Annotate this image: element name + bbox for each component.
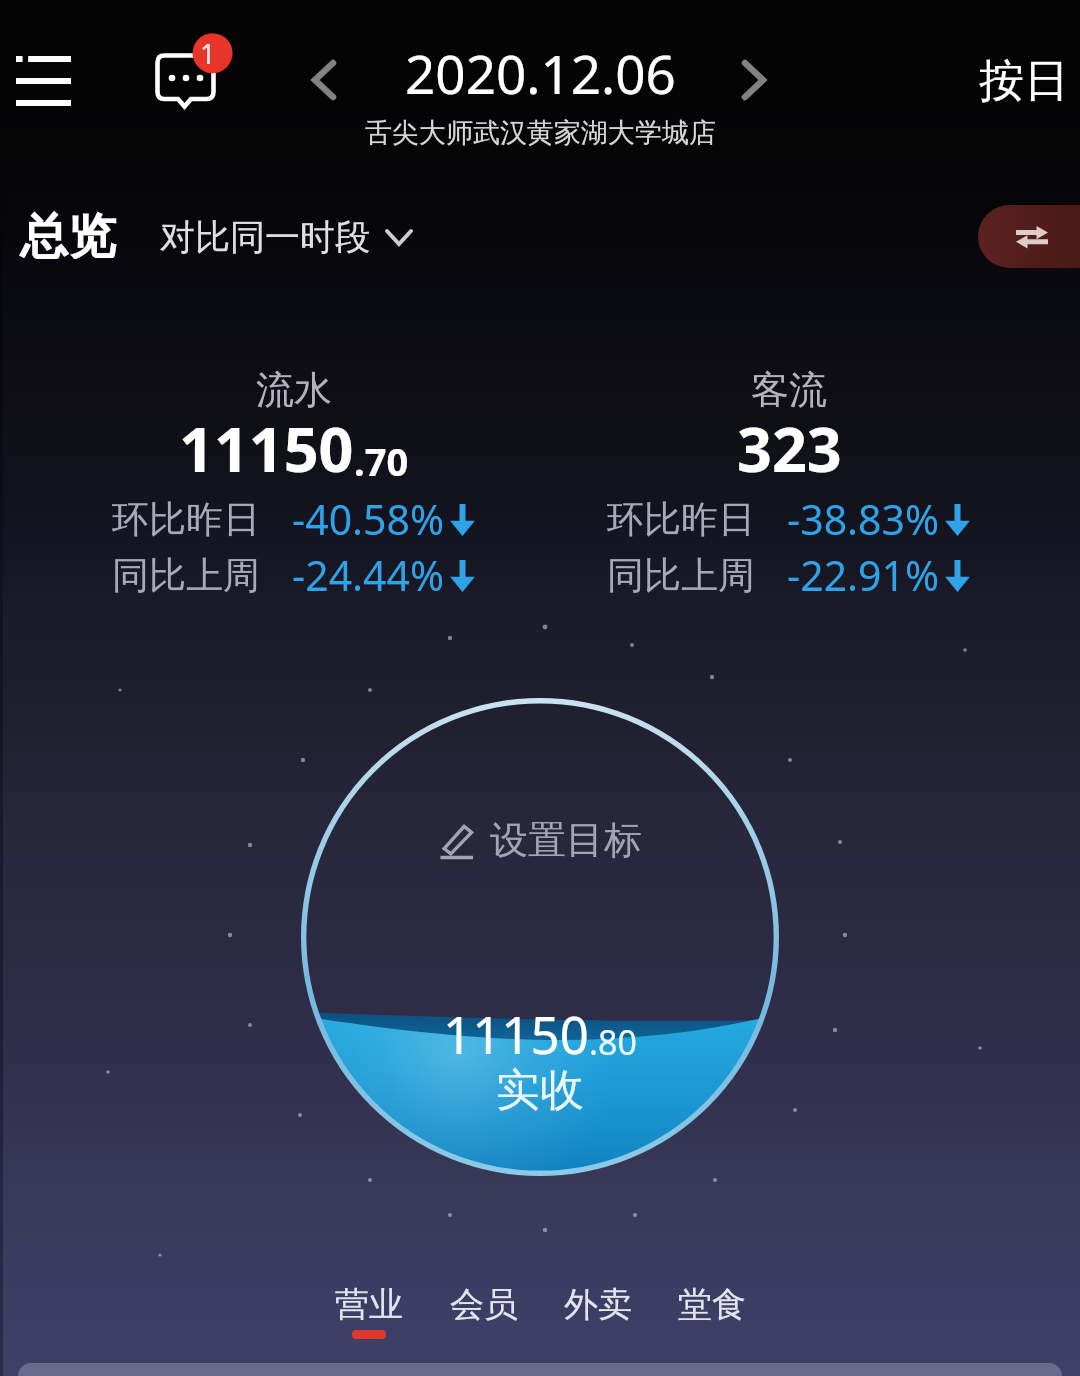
staticText: 堂食 — [678, 1283, 746, 1326]
staticText: 客流 — [751, 366, 827, 414]
staticText: 11150 — [179, 407, 354, 490]
staticText: .70 — [354, 435, 409, 487]
staticText: 环比昨日 — [112, 496, 260, 543]
staticText: 同比上周 — [607, 552, 755, 599]
button[interactable]: Switch comparison — [978, 205, 1080, 268]
staticText: 总览 — [20, 207, 116, 267]
staticText: 对比同一时段 — [160, 215, 370, 259]
button[interactable]: Next day — [718, 44, 790, 116]
staticText: .80 — [589, 1019, 638, 1065]
button[interactable]: 营业 — [323, 1279, 415, 1343]
staticText: 舌尖大师武汉黄家湖大学城店 — [365, 116, 716, 150]
button[interactable]: 外卖 — [552, 1279, 644, 1343]
button[interactable]: 设置目标 — [439, 816, 642, 864]
button[interactable]: Previous day — [288, 44, 360, 116]
button[interactable]: 会员 — [438, 1279, 530, 1343]
staticText: 营业 — [335, 1283, 403, 1326]
staticText: -22.91% — [787, 547, 940, 603]
staticText: 2020.12.06 — [405, 37, 676, 109]
staticText: 11150 — [443, 999, 589, 1068]
staticText: 实收 — [496, 1063, 584, 1118]
staticText: -40.58% — [292, 491, 445, 547]
button[interactable]: 堂食 — [666, 1279, 758, 1343]
staticText: 环比昨日 — [607, 496, 755, 543]
staticText: 323 — [737, 407, 842, 490]
button[interactable]: 对比同一时段 — [160, 207, 412, 267]
button[interactable]: Menu — [4, 42, 82, 120]
button[interactable]: Messages — [140, 24, 240, 124]
staticText: -38.83% — [787, 491, 940, 547]
staticText: 按日 — [979, 53, 1069, 110]
staticText: 外卖 — [564, 1283, 632, 1326]
staticText: -24.44% — [292, 547, 445, 603]
staticText: 设置目标 — [490, 816, 642, 864]
button[interactable]: 按日 — [973, 47, 1075, 116]
staticText: 流水 — [256, 366, 332, 414]
staticText: 1 — [200, 35, 216, 72]
staticText: 同比上周 — [112, 552, 260, 599]
button[interactable]: 2020.12.06 — [0, 37, 1080, 109]
staticText: 会员 — [450, 1283, 518, 1326]
